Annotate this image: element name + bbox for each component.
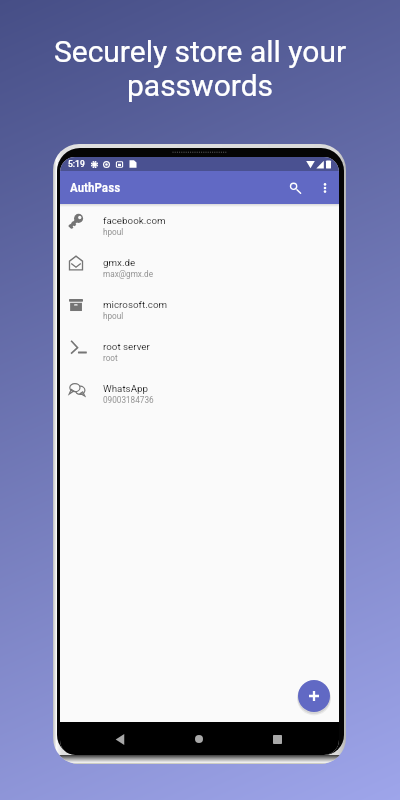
button[interactable]: Recent apps [264, 726, 290, 752]
staticText: root [103, 353, 118, 363]
button[interactable]: Search [281, 174, 309, 202]
button[interactable]: More options [311, 174, 339, 202]
staticText: max@gmx.de [103, 269, 154, 279]
staticText: 5:19 [68, 159, 85, 169]
button[interactable]: microsoft.com [60, 289, 339, 331]
button[interactable]: Add password entry [298, 680, 330, 712]
staticText: hpoul [103, 311, 124, 321]
staticText: microsoft.com [103, 299, 168, 310]
button[interactable]: root server [60, 331, 339, 373]
staticText: facebook.com [103, 215, 166, 226]
staticText: hpoul [103, 227, 124, 237]
staticText: gmx.de [103, 257, 136, 268]
button[interactable]: Back [107, 726, 133, 752]
button[interactable]: Home [186, 726, 212, 752]
staticText: root server [103, 341, 150, 352]
staticText: 09003184736 [103, 395, 154, 405]
button[interactable]: facebook.com [60, 205, 339, 247]
staticText: WhatsApp [103, 383, 149, 394]
button[interactable]: gmx.de [60, 247, 339, 289]
staticText: Securely store all your passwords [24, 34, 376, 103]
button[interactable]: WhatsApp [60, 373, 339, 415]
staticText: AuthPass [70, 180, 121, 195]
